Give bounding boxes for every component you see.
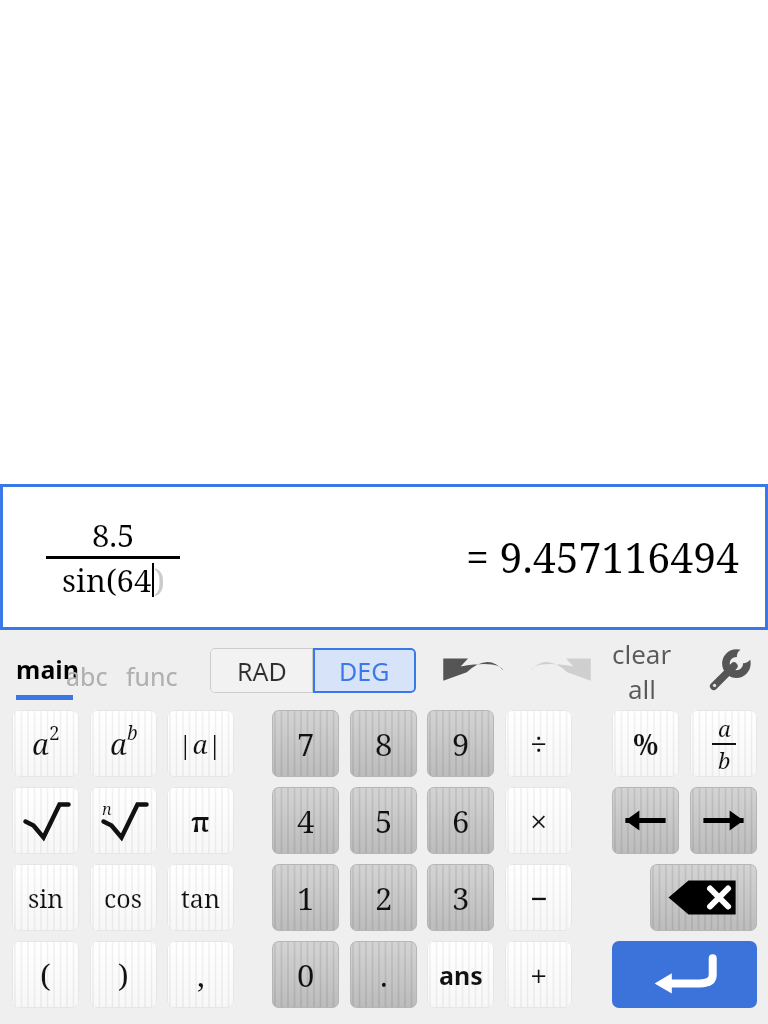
- button[interactable]: 3: [427, 864, 494, 931]
- staticText: all: [628, 671, 657, 702]
- button[interactable]: a: [90, 710, 157, 777]
- staticText: 0: [297, 954, 315, 996]
- staticText: 2: [375, 877, 393, 919]
- staticText: ans: [439, 958, 483, 992]
- staticText: |a|: [178, 726, 223, 761]
- staticText: abc: [66, 659, 108, 693]
- button[interactable]: abc: [66, 659, 108, 693]
- staticText: (: [40, 954, 51, 996]
- button[interactable]: sin: [12, 864, 79, 931]
- staticText: −: [530, 877, 548, 919]
- staticText: cos: [104, 881, 143, 915]
- button[interactable]: Move right: [690, 787, 757, 854]
- button[interactable]: ): [90, 941, 157, 1008]
- staticText: π: [191, 802, 210, 840]
- button[interactable]: |a|: [167, 710, 234, 777]
- staticText: b: [718, 745, 731, 775]
- button[interactable]: a: [690, 710, 757, 777]
- button[interactable]: tan: [167, 864, 234, 931]
- staticText: main: [16, 652, 80, 686]
- button[interactable]: 1: [272, 864, 339, 931]
- button[interactable]: Undo: [438, 648, 508, 692]
- button[interactable]: +: [505, 941, 572, 1008]
- button[interactable]: 8.5: [0, 484, 768, 630]
- staticText: 2: [49, 720, 60, 746]
- staticText: DEG: [339, 654, 390, 688]
- button[interactable]: Move left: [612, 787, 679, 854]
- staticText: a: [32, 724, 49, 763]
- staticText: 8.5: [92, 514, 135, 556]
- button[interactable]: 5: [350, 787, 417, 854]
- button[interactable]: Backspace: [650, 864, 757, 931]
- staticText: 6: [452, 800, 470, 842]
- staticText: a: [110, 724, 127, 763]
- staticText: ): [118, 954, 129, 996]
- button[interactable]: (: [12, 941, 79, 1008]
- staticText: %: [633, 725, 659, 763]
- button[interactable]: 7: [272, 710, 339, 777]
- button[interactable]: 0: [272, 941, 339, 1008]
- staticText: clear: [612, 636, 672, 671]
- staticText: sin(64: [62, 559, 152, 601]
- staticText: .: [380, 954, 388, 996]
- button[interactable]: .: [350, 941, 417, 1008]
- button[interactable]: Square root: [12, 787, 79, 854]
- button[interactable]: ÷: [505, 710, 572, 777]
- button[interactable]: func: [126, 659, 178, 693]
- button[interactable]: 8: [350, 710, 417, 777]
- staticText: ×: [530, 800, 548, 842]
- button[interactable]: −: [505, 864, 572, 931]
- staticText: sin: [28, 881, 64, 915]
- button[interactable]: clear: [590, 636, 694, 702]
- button[interactable]: a: [12, 710, 79, 777]
- button[interactable]: Settings: [700, 648, 756, 696]
- button[interactable]: ×: [505, 787, 572, 854]
- staticText: +: [530, 954, 548, 996]
- staticText: b: [127, 720, 138, 746]
- staticText: RAD: [237, 654, 287, 688]
- button[interactable]: Enter: [612, 941, 757, 1008]
- button[interactable]: Nth root: [90, 787, 157, 854]
- button[interactable]: 6: [427, 787, 494, 854]
- staticText: = 9.457116494: [466, 529, 740, 585]
- staticText: 3: [452, 877, 470, 919]
- button[interactable]: 4: [272, 787, 339, 854]
- button[interactable]: 2: [350, 864, 417, 931]
- staticText: ): [154, 559, 165, 601]
- staticText: n: [102, 798, 112, 820]
- staticText: 7: [297, 723, 315, 765]
- staticText: 8: [375, 723, 393, 765]
- staticText: 4: [297, 800, 315, 842]
- staticText: 1: [297, 877, 315, 919]
- button[interactable]: ,: [167, 941, 234, 1008]
- staticText: ÷: [530, 723, 548, 765]
- staticText: 5: [375, 800, 393, 842]
- button[interactable]: π: [167, 787, 234, 854]
- staticText: func: [126, 659, 178, 693]
- staticText: a: [718, 713, 731, 743]
- staticText: ,: [197, 954, 205, 996]
- button[interactable]: %: [612, 710, 679, 777]
- staticText: 9: [452, 723, 470, 765]
- button[interactable]: cos: [90, 864, 157, 931]
- button[interactable]: Redo: [526, 648, 596, 692]
- button[interactable]: RAD: [210, 648, 313, 693]
- button[interactable]: 9: [427, 710, 494, 777]
- staticText: tan: [181, 881, 221, 915]
- button[interactable]: main: [16, 652, 80, 700]
- button[interactable]: DEG: [313, 648, 416, 693]
- button[interactable]: ans: [427, 941, 494, 1008]
